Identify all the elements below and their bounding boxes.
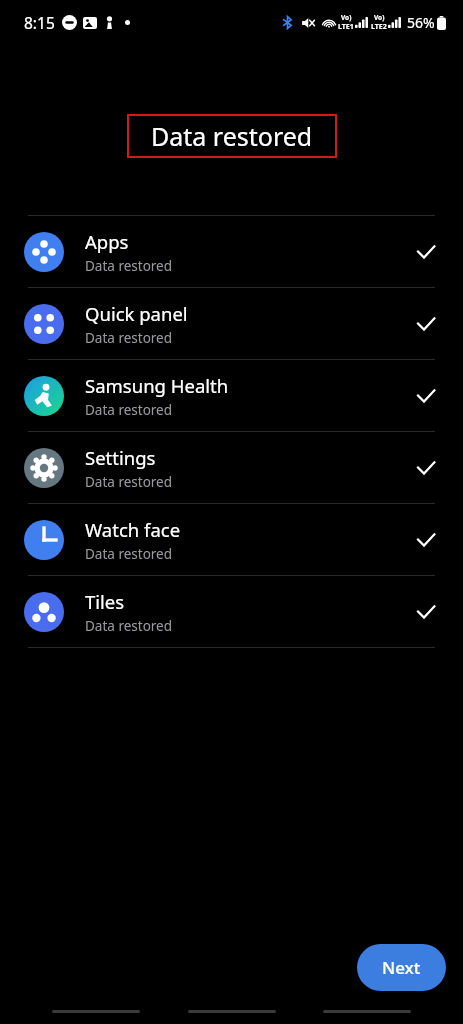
staticText: Watch face	[85, 517, 181, 542]
button[interactable]: Tiles	[0, 576, 463, 647]
staticText: Data restored	[151, 119, 313, 153]
staticText: 8:15	[24, 12, 55, 33]
other: Restored	[413, 311, 439, 337]
staticText: Data restored	[85, 473, 173, 491]
staticText: Data restored	[85, 545, 173, 563]
staticText: Tiles	[85, 589, 125, 614]
staticText: Vo)	[341, 13, 352, 22]
button[interactable]: Samsung Health	[0, 360, 463, 431]
staticText: Next	[382, 956, 421, 979]
staticText: Apps	[85, 229, 129, 254]
button[interactable]: Navigation	[52, 1010, 140, 1013]
button[interactable]: Quick panel	[0, 288, 463, 359]
staticText: Data restored	[85, 329, 173, 347]
other: Restored	[413, 383, 439, 409]
button[interactable]: Navigation	[188, 1010, 276, 1013]
other: Restored	[413, 527, 439, 553]
button[interactable]: Apps	[0, 216, 463, 287]
other: Restored	[413, 599, 439, 625]
button[interactable]: Watch face	[0, 504, 463, 575]
staticText: Samsung Health	[85, 373, 229, 398]
staticText: Data restored	[85, 257, 173, 275]
button[interactable]: Navigation	[323, 1010, 411, 1013]
button[interactable]: Settings	[0, 432, 463, 503]
staticText: Data restored	[85, 617, 173, 635]
staticText: Quick panel	[85, 301, 188, 326]
staticText: Data restored	[85, 401, 173, 419]
button[interactable]: Next	[357, 944, 446, 991]
other: Restored	[413, 455, 439, 481]
staticText: LTE1	[338, 22, 354, 32]
staticText: Vo)	[374, 13, 385, 22]
staticText: Settings	[85, 445, 156, 470]
staticText: 56%	[407, 13, 435, 32]
other: Restored	[413, 239, 439, 265]
staticText: LTE2	[371, 22, 387, 32]
